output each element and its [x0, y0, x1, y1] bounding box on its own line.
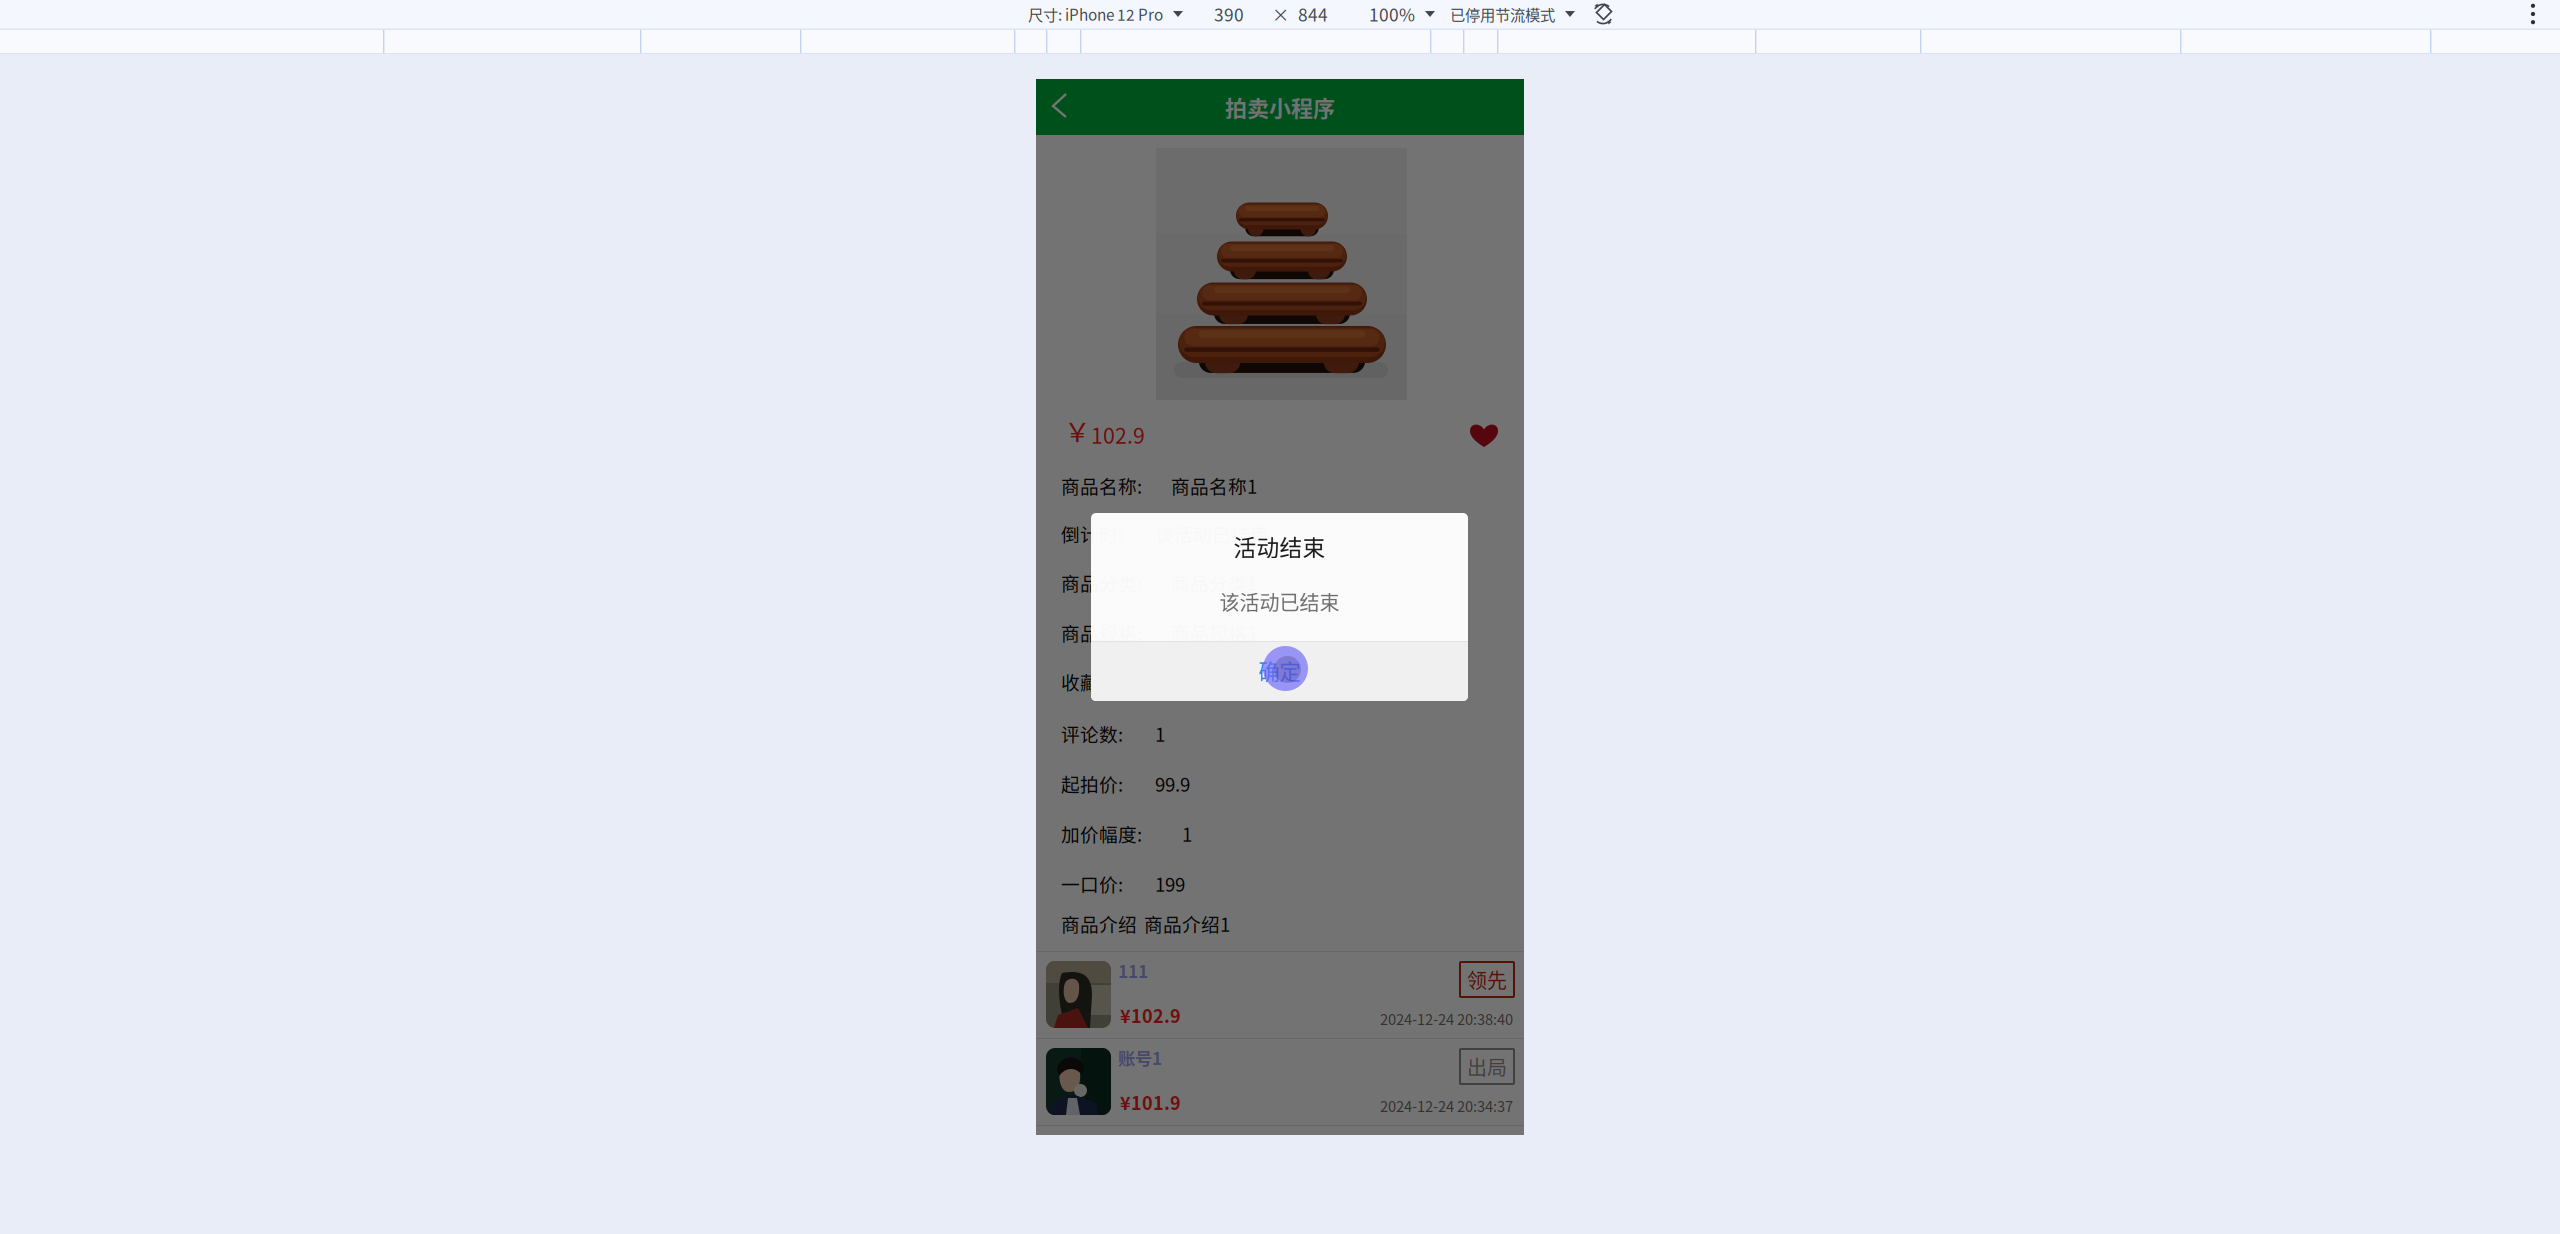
staticText: 商品分类1 — [1171, 569, 1257, 596]
staticText: 844 — [1298, 1, 1328, 27]
button[interactable]: 已停用节流模式 — [1450, 0, 1575, 28]
button[interactable]: 111 — [1036, 952, 1524, 1038]
button[interactable]: Rotate — [1592, 3, 1614, 25]
staticText: ￥ — [1064, 411, 1091, 450]
staticText: 拍卖小程序 — [1225, 91, 1335, 123]
staticText: 商品分类: — [1061, 569, 1142, 596]
staticText: 390 — [1214, 1, 1244, 27]
staticText: 已停用节流模式 — [1450, 3, 1555, 25]
staticText: 1 — [1182, 820, 1192, 847]
button[interactable]: Favourite — [1470, 423, 1498, 447]
staticText: 商品规格: — [1061, 619, 1142, 646]
button[interactable]: Back — [1049, 88, 1077, 124]
staticText: 该活动已结束 — [1155, 520, 1269, 547]
staticText: 起拍价: — [1061, 770, 1123, 797]
button[interactable]: More options — [2524, 3, 2542, 25]
staticText: 199 — [1155, 870, 1185, 897]
staticText: 100% — [1369, 1, 1415, 27]
staticText: 倒计时: — [1061, 520, 1123, 547]
staticText: 1 — [1155, 720, 1165, 747]
staticText: 商品名称: — [1061, 472, 1142, 499]
staticText: 尺寸: iPhone 12 Pro — [1028, 3, 1163, 25]
staticText: 2024-12-24 20:38:40 — [1380, 1008, 1513, 1029]
staticText: 111 — [1118, 958, 1148, 983]
staticText: 账号1 — [1118, 1045, 1162, 1070]
staticText: 加价幅度: — [1061, 820, 1142, 847]
staticText: 商品介绍1 — [1144, 910, 1230, 937]
staticText: 确定 — [1258, 655, 1300, 686]
staticText: 商品名称1 — [1171, 472, 1257, 499]
staticText: × — [1272, 1, 1289, 27]
button[interactable]: 尺寸: iPhone 12 Pro — [1028, 0, 1183, 28]
staticText: 2024-12-24 20:34:37 — [1380, 1095, 1513, 1116]
staticText: ¥102.9 — [1120, 1002, 1181, 1028]
staticText: ¥101.9 — [1120, 1089, 1181, 1115]
staticText: 评论数: — [1061, 720, 1123, 747]
staticText: 领先 — [1467, 965, 1507, 994]
staticText: 商品规格1 — [1171, 619, 1257, 646]
staticText: 活动结束 — [1233, 530, 1325, 563]
button[interactable]: 100% — [1369, 0, 1435, 28]
button[interactable]: 确定 — [1091, 642, 1468, 701]
staticText: 102.9 — [1091, 419, 1145, 450]
staticText: 收藏数: — [1061, 668, 1123, 695]
staticText: 商品介绍 — [1061, 910, 1137, 937]
staticText: 出局 — [1467, 1052, 1507, 1081]
staticText: 该活动已结束 — [1219, 587, 1339, 616]
button[interactable]: 账号1 — [1036, 1039, 1524, 1125]
staticText: 99.9 — [1155, 770, 1190, 797]
staticText: 一口价: — [1061, 870, 1123, 897]
